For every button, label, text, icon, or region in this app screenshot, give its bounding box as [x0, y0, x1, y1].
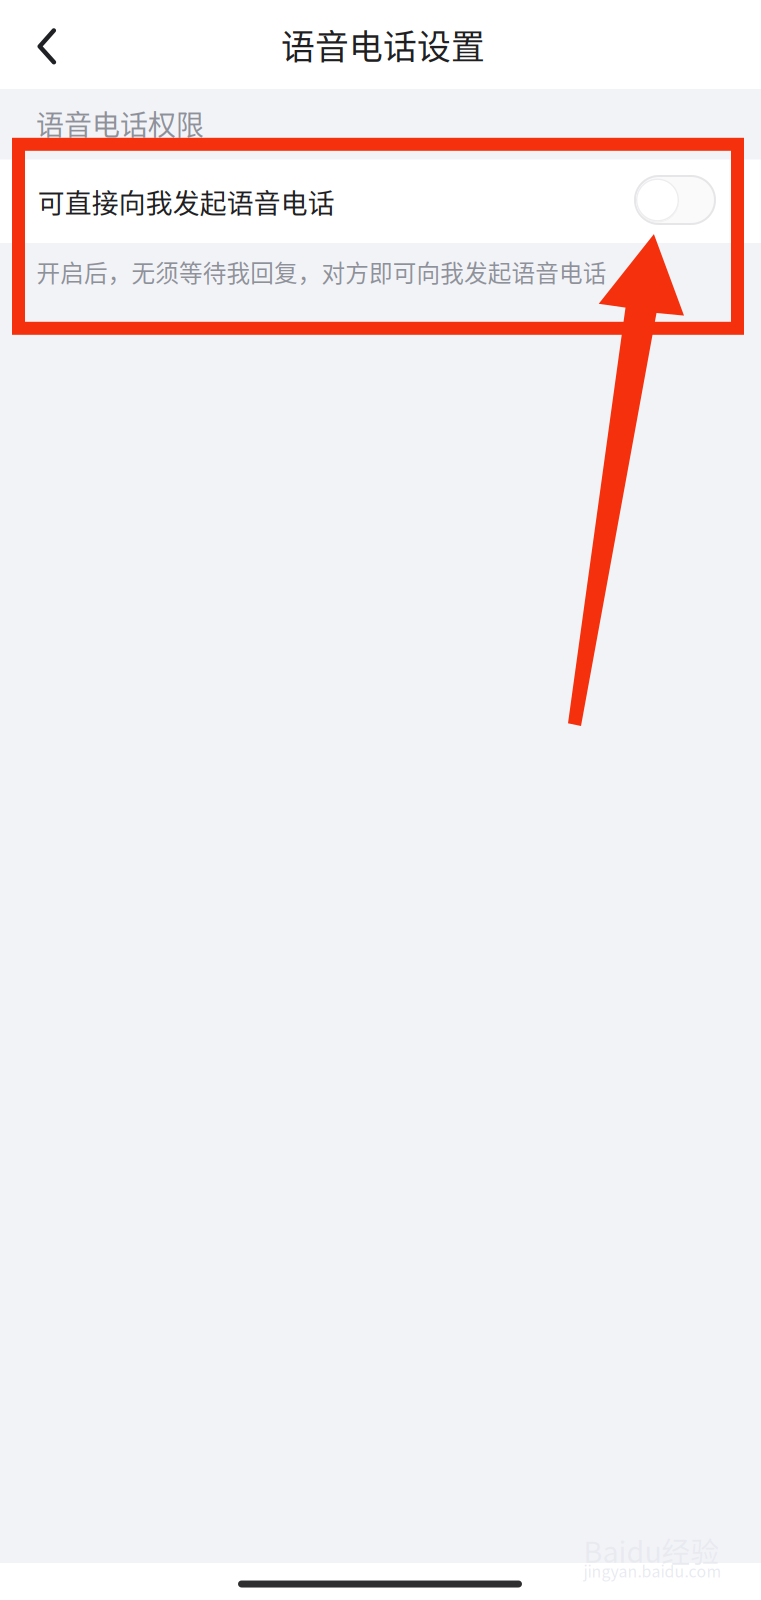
staticText: 语音电话权限: [36, 103, 204, 143]
staticText: jingyan.baidu.com: [583, 1559, 721, 1582]
staticText: 语音电话设置: [281, 20, 485, 69]
staticText: 开启后，无须等待我回复，对方即可向我发起语音电话: [36, 254, 607, 289]
staticText: Baidu经验: [583, 1529, 719, 1571]
button[interactable]: 可直接向我发起语音电话: [0, 159, 761, 243]
staticText: 可直接向我发起语音电话: [38, 182, 335, 221]
button[interactable]: 可直接向我发起语音电话，关闭: [634, 175, 716, 225]
button[interactable]: 返回: [0, 0, 96, 89]
